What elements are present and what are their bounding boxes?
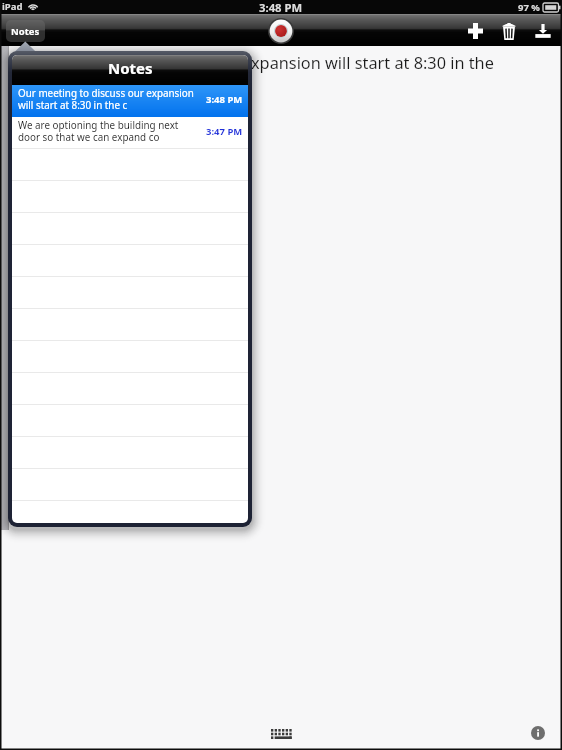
button[interactable]: Keyboard — [266, 724, 298, 744]
button[interactable]: Add — [462, 18, 488, 44]
staticText: Notes — [108, 58, 153, 78]
button[interactable]: Our meeting to discuss our expansion wil… — [12, 85, 248, 117]
button[interactable]: Download — [530, 18, 556, 44]
staticText: Notes — [11, 25, 40, 38]
button[interactable]: Delete — [496, 18, 522, 44]
button[interactable]: Info — [527, 722, 549, 744]
button[interactable]: We are optioning the building next door … — [12, 117, 248, 149]
staticText: 3:48 PM — [259, 0, 303, 14]
staticText: 3:47 PM — [206, 125, 243, 138]
staticText: 3:48 PM — [206, 93, 243, 106]
staticText: 97 % — [518, 1, 540, 14]
staticText: xpansion will start at 8:30 in the — [251, 52, 494, 74]
button[interactable]: Notes — [6, 20, 45, 42]
button[interactable]: Record — [268, 18, 294, 44]
staticText: Our meeting to discuss our expansion wil… — [18, 86, 206, 112]
staticText: iPad — [2, 0, 23, 13]
staticText: We are optioning the building next door … — [18, 118, 206, 144]
